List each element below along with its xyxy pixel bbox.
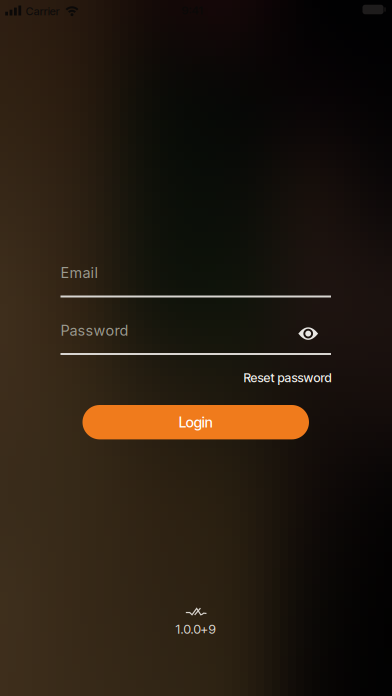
button[interactable]: Login <box>82 405 309 439</box>
button[interactable]: Show password <box>288 314 328 354</box>
staticText: Email <box>60 264 98 281</box>
staticText: 9:41 <box>181 3 202 17</box>
staticText: Password <box>60 322 128 339</box>
staticText: Reset password <box>243 370 331 385</box>
staticText: Login <box>179 414 213 431</box>
staticText: 1.0.0+9 <box>175 621 215 637</box>
button[interactable]: Reset password <box>243 370 331 385</box>
textField[interactable]: Email <box>60 264 331 281</box>
staticText: Carrier <box>26 5 60 18</box>
secureTextField[interactable]: Password <box>60 322 331 339</box>
